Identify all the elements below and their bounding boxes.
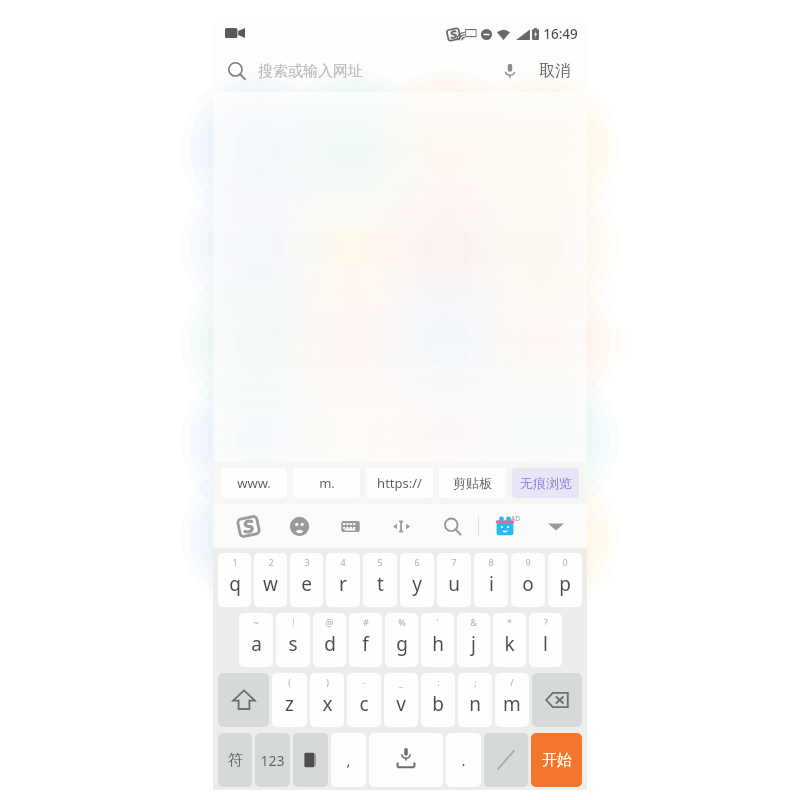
staticText: 搜索或输入网址 (258, 62, 363, 81)
staticText: 0 (562, 556, 568, 568)
button[interactable]: ; (458, 673, 492, 727)
button[interactable]: : (421, 673, 455, 727)
staticText: h (432, 631, 444, 657)
button[interactable]: Sogou input (223, 504, 274, 548)
staticText: : (437, 676, 440, 688)
button[interactable]: 取消 (537, 57, 573, 85)
staticText: 2 (268, 556, 274, 568)
button[interactable]: Emoji (274, 504, 325, 548)
button[interactable]: - (347, 673, 381, 727)
staticText: / (510, 676, 514, 688)
button[interactable]: * (493, 613, 526, 667)
staticText: ~ (253, 616, 259, 628)
button[interactable]: m. (293, 468, 360, 498)
staticText: ( (288, 676, 291, 688)
staticText: - (363, 676, 366, 688)
staticText: i (489, 571, 494, 597)
button[interactable]: % (385, 613, 418, 667)
button[interactable]: Gift AD (479, 504, 530, 548)
staticText: w (263, 571, 278, 597)
button[interactable]: Shift (218, 673, 269, 727)
button[interactable]: Switch language (293, 733, 328, 787)
staticText: 取消 (539, 61, 571, 81)
button[interactable]: 3 (290, 553, 323, 607)
button[interactable]: ( (272, 673, 307, 727)
button[interactable]: ' (421, 613, 454, 667)
staticText: @ (325, 616, 334, 628)
staticText: 开始 (542, 751, 572, 770)
button[interactable]: 符 (218, 733, 252, 787)
button[interactable]: _ (384, 673, 418, 727)
staticText: j (471, 631, 476, 657)
button[interactable]: ) (310, 673, 344, 727)
staticText: ? (544, 616, 548, 628)
staticText: AD (511, 514, 520, 523)
button[interactable]: Chinese/English toggle (484, 733, 528, 787)
staticText: l (543, 631, 548, 657)
staticText: 剪贴板 (453, 475, 492, 491)
staticText: ! (292, 616, 295, 628)
staticText: c (359, 691, 369, 717)
button[interactable]: Move cursor (376, 504, 427, 548)
staticText: f (362, 631, 369, 657)
staticText: k (504, 631, 515, 657)
button[interactable]: 无痕浏览 (512, 468, 579, 498)
button[interactable]: 5 (363, 553, 397, 607)
staticText: 6 (414, 556, 420, 568)
button[interactable]: # (349, 613, 382, 667)
button[interactable]: ? (529, 613, 562, 667)
staticText: v (396, 691, 406, 717)
other: Search (227, 61, 247, 81)
button[interactable]: , (331, 733, 366, 787)
button[interactable]: 7 (437, 553, 471, 607)
staticText: ) (326, 676, 329, 688)
button[interactable]: 8 (474, 553, 508, 607)
staticText: g (396, 631, 408, 657)
staticText: z (285, 691, 294, 717)
staticText: 4 (340, 556, 346, 568)
staticText: % (398, 616, 406, 628)
staticText: 3 (304, 556, 310, 568)
button[interactable]: Search (427, 504, 478, 548)
staticText: , (346, 750, 351, 770)
button[interactable]: 4 (326, 553, 360, 607)
staticText: 16:49 (543, 25, 578, 43)
staticText: ' (436, 616, 439, 628)
button[interactable]: Backspace (532, 673, 582, 727)
staticText: 5 (377, 556, 383, 568)
button[interactable]: Space / voice input (369, 733, 443, 787)
button[interactable]: / (495, 673, 529, 727)
staticText: # (363, 616, 369, 628)
button[interactable]: 剪贴板 (439, 468, 506, 498)
button[interactable]: 0 (548, 553, 582, 607)
staticText: www. (237, 474, 271, 492)
staticText: p (559, 571, 571, 597)
staticText: o (522, 571, 534, 597)
button[interactable]: 1 (218, 553, 251, 607)
staticText: t (377, 571, 384, 597)
staticText: 1 (232, 556, 238, 568)
button[interactable]: 9 (511, 553, 545, 607)
staticText: x (322, 691, 333, 717)
button[interactable]: www. (221, 468, 287, 498)
button[interactable]: Keyboard layout (325, 504, 376, 548)
staticText: u (448, 571, 460, 597)
staticText: s (288, 631, 298, 657)
staticText: 123 (260, 751, 285, 770)
button[interactable]: 开始 (531, 733, 582, 787)
button[interactable]: ! (276, 613, 310, 667)
staticText: 8 (488, 556, 494, 568)
button[interactable]: 2 (254, 553, 287, 607)
button[interactable]: Collapse keyboard (530, 504, 581, 548)
button[interactable]: ~ (239, 613, 273, 667)
button[interactable]: . (446, 733, 481, 787)
button[interactable]: https:// (366, 468, 433, 498)
button[interactable]: 6 (400, 553, 434, 607)
staticText: y (412, 571, 422, 597)
button[interactable]: Voice search (497, 58, 523, 84)
staticText: n (469, 691, 481, 717)
staticText: a (251, 631, 262, 657)
button[interactable]: 123 (255, 733, 290, 787)
button[interactable]: @ (313, 613, 346, 667)
button[interactable]: & (457, 613, 490, 667)
